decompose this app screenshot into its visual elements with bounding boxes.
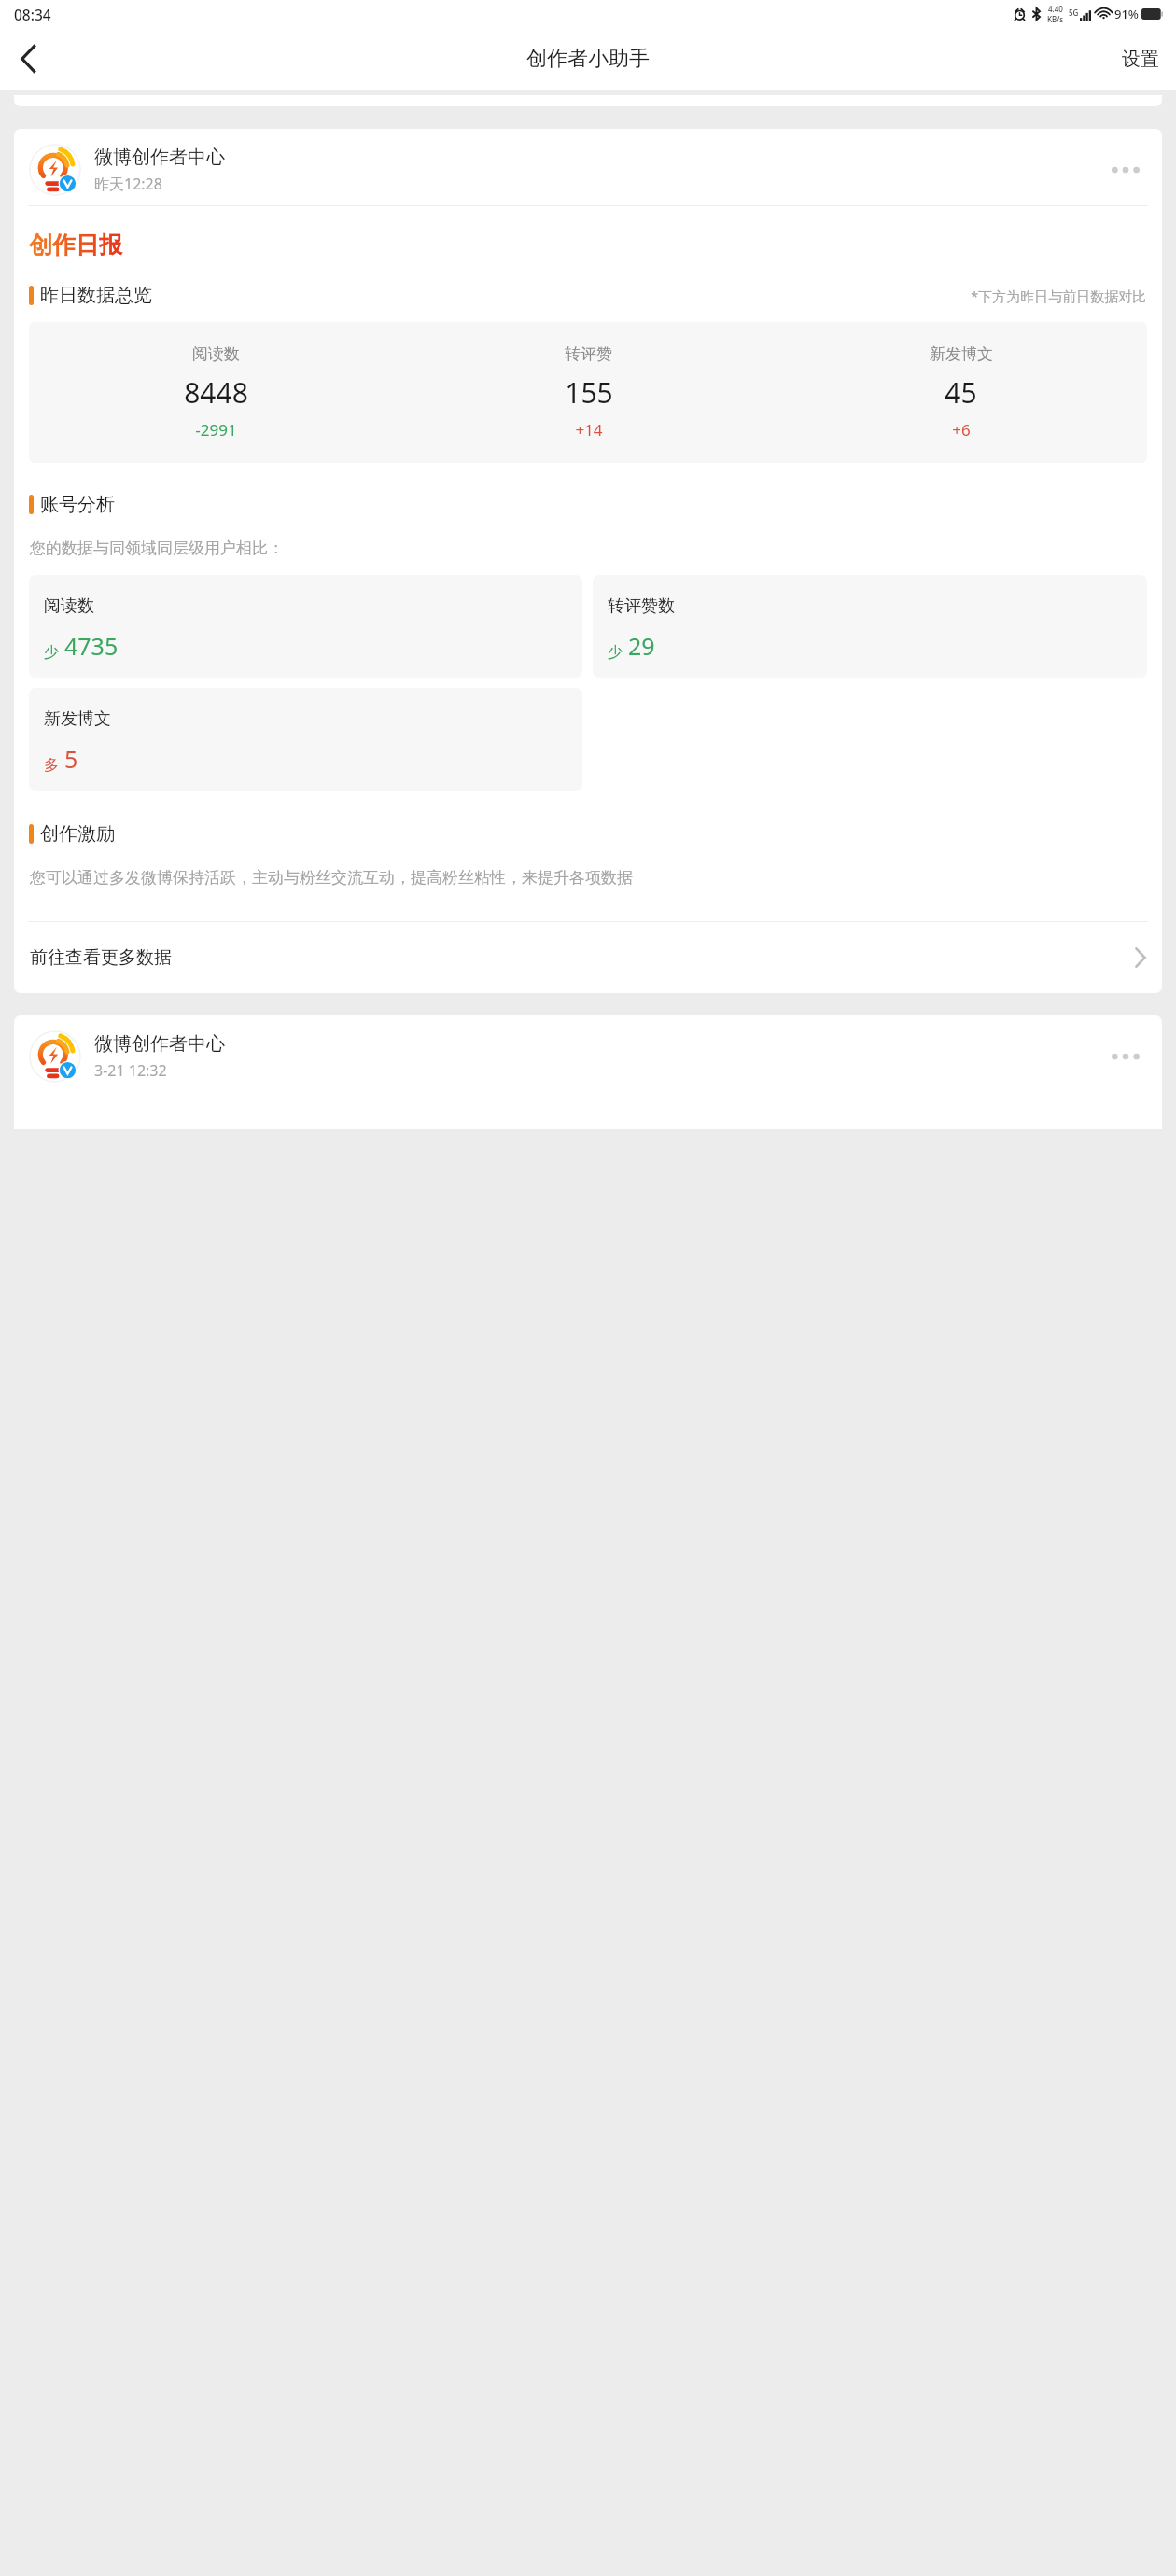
staticText: +6 bbox=[952, 419, 971, 441]
staticText: 08:34 bbox=[14, 5, 51, 24]
staticText: 阅读数 bbox=[44, 595, 94, 617]
staticText: 少 bbox=[44, 643, 59, 662]
staticText: 设置 bbox=[1122, 48, 1159, 71]
staticText: 新发博文 bbox=[44, 708, 111, 730]
staticText: 创作者小助手 bbox=[526, 46, 650, 72]
staticText: 账号分析 bbox=[40, 493, 115, 516]
staticText: 创作激励 bbox=[40, 822, 115, 846]
button[interactable]: Back bbox=[0, 30, 58, 88]
staticText: 您的数据与同领域同层级用户相比： bbox=[30, 539, 284, 558]
staticText: 29 bbox=[628, 630, 655, 662]
staticText: 8448 bbox=[184, 373, 248, 412]
staticText: 转评赞 bbox=[565, 344, 612, 364]
button[interactable]: More options bbox=[1104, 1035, 1147, 1078]
staticText: 4735 bbox=[64, 630, 119, 662]
staticText: 4.40 bbox=[1048, 4, 1063, 14]
staticText: 155 bbox=[565, 373, 613, 412]
staticText: 5G bbox=[1069, 7, 1079, 18]
staticText: 前往查看更多数据 bbox=[30, 946, 172, 969]
staticText: 昨日数据总览 bbox=[40, 284, 152, 307]
staticText: 45 bbox=[945, 373, 977, 412]
button[interactable]: 微博创作者中心 bbox=[14, 129, 1162, 993]
button[interactable]: 设置 bbox=[1105, 38, 1176, 80]
button[interactable]: 转评赞数 bbox=[593, 575, 1147, 678]
button[interactable]: 新发博文 bbox=[29, 688, 582, 791]
staticText: *下方为昨日与前日数据对比 bbox=[971, 287, 1147, 305]
staticText: 创作日报 bbox=[29, 231, 122, 259]
staticText: 阅读数 bbox=[192, 344, 240, 364]
staticText: +14 bbox=[575, 419, 603, 441]
staticText: 转评赞数 bbox=[608, 595, 675, 617]
staticText: 微博创作者中心 bbox=[94, 146, 225, 169]
button[interactable]: 前往查看更多数据 bbox=[14, 922, 1162, 993]
staticText: 少 bbox=[608, 643, 623, 662]
staticText: 新发博文 bbox=[930, 344, 993, 364]
staticText: 91% bbox=[1114, 6, 1139, 22]
staticText: 5 bbox=[64, 743, 78, 775]
button[interactable]: 阅读数 bbox=[29, 575, 582, 678]
staticText: 3-21 12:32 bbox=[94, 1060, 167, 1081]
button[interactable]: 微博创作者中心 bbox=[14, 1015, 1162, 1129]
button[interactable]: More options bbox=[1104, 148, 1147, 191]
staticText: 微博创作者中心 bbox=[94, 1032, 225, 1056]
staticText: KB/s bbox=[1047, 14, 1064, 24]
staticText: 昨天12:28 bbox=[94, 174, 162, 194]
staticText: 多 bbox=[44, 756, 59, 775]
staticText: 您可以通过多发微博保持活跃，主动与粉丝交流互动，提高粉丝粘性，来提升各项数据 bbox=[30, 868, 1146, 888]
staticText: -2991 bbox=[195, 419, 237, 441]
